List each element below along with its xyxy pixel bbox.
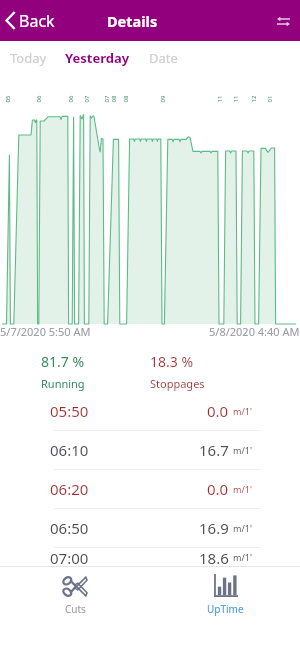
- staticText: m/1': [233, 405, 252, 417]
- staticText: 5/7/2020 5:50 AM: [0, 324, 209, 339]
- staticText: m/1': [233, 551, 252, 563]
- staticText: 06:10: [50, 440, 89, 460]
- staticText: Today: [10, 49, 47, 67]
- staticText: m/1': [233, 522, 252, 534]
- staticText: 06:20: [50, 479, 89, 499]
- staticText: Details: [107, 11, 158, 31]
- staticText: m/1': [233, 483, 252, 495]
- button[interactable]: 06:50: [0, 509, 300, 547]
- staticText: Running: [41, 376, 85, 391]
- button[interactable]: 06:10: [0, 431, 300, 469]
- button[interactable]: 06:20: [0, 470, 300, 508]
- staticText: Date: [149, 49, 178, 67]
- staticText: 18.3 %: [150, 352, 194, 371]
- button[interactable]: Swap: [270, 8, 296, 34]
- staticText: Stoppages: [150, 376, 205, 391]
- staticText: Back: [19, 10, 55, 32]
- staticText: Yesterday: [65, 49, 130, 67]
- staticText: 06:50: [50, 518, 89, 538]
- staticText: UpTime: [207, 602, 244, 616]
- button[interactable]: Today: [10, 41, 47, 75]
- staticText: 81.7 %: [41, 352, 85, 371]
- staticText: Cuts: [65, 602, 86, 616]
- staticText: 07:00: [50, 548, 89, 566]
- button[interactable]: Yesterday: [65, 41, 130, 75]
- staticText: 16.7: [199, 440, 229, 460]
- staticText: 5/8/2020 4:40 AM: [209, 324, 300, 339]
- staticText: 18.6: [199, 548, 229, 566]
- staticText: 0.0: [207, 479, 229, 499]
- staticText: 0.0: [207, 401, 229, 421]
- staticText: 05:50: [50, 401, 89, 421]
- button[interactable]: 05:50: [0, 392, 300, 430]
- button[interactable]: UpTime: [150, 567, 300, 649]
- button[interactable]: Back: [5, 0, 55, 41]
- button[interactable]: Cuts: [0, 567, 150, 649]
- staticText: m/1': [233, 444, 252, 456]
- button[interactable]: Date: [149, 41, 178, 75]
- button[interactable]: 07:00: [0, 548, 300, 566]
- staticText: 16.9: [199, 518, 229, 538]
